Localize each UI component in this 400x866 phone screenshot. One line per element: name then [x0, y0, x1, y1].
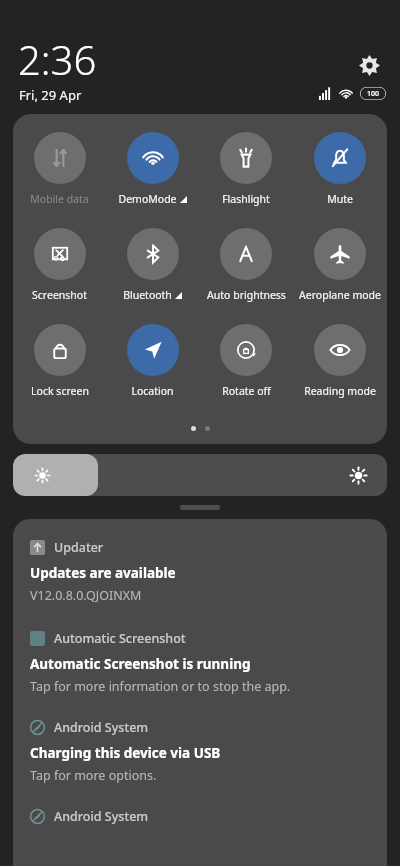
button[interactable]: Automatic Screenshot — [13, 630, 387, 695]
staticText: Updates are available — [30, 564, 176, 582]
staticText: Mute — [327, 192, 353, 206]
staticText: Fri, 29 Apr — [19, 86, 82, 104]
button[interactable]: Mobile data — [13, 132, 106, 206]
button[interactable]: Lock screen — [13, 324, 106, 398]
staticText: Tap for more options. — [30, 767, 157, 784]
staticText: Aeroplane mode — [299, 288, 381, 302]
staticText: Bluetooth — [123, 288, 172, 302]
button[interactable]: Brightness — [13, 454, 387, 496]
button[interactable]: Android System — [13, 719, 387, 784]
button[interactable]: Mute — [293, 132, 387, 206]
staticText: Auto brightness — [207, 288, 286, 302]
staticText: Rotate off — [222, 384, 271, 398]
button[interactable]: Settings — [352, 48, 386, 82]
staticText: Updater — [54, 539, 104, 556]
staticText: Android System — [54, 719, 149, 736]
staticText: Screenshot — [32, 288, 87, 302]
staticText: Tap for more information or to stop the … — [30, 678, 291, 695]
staticText: Android System — [54, 808, 149, 825]
staticText: Automatic Screenshot is running — [30, 655, 251, 673]
button[interactable]: Updater — [13, 539, 387, 604]
button[interactable]: Flashlight — [199, 132, 293, 206]
button[interactable]: Rotate off — [199, 324, 293, 398]
staticText: Lock screen — [31, 384, 89, 398]
button[interactable]: Bluetooth — [106, 228, 199, 302]
button[interactable]: Android System — [13, 808, 387, 825]
staticText: Reading mode — [304, 384, 376, 398]
staticText: V12.0.8.0.QJOINXM — [30, 587, 142, 604]
staticText: 2:36 — [18, 32, 97, 86]
staticText: Mobile data — [30, 192, 89, 206]
button[interactable]: DemoMode — [106, 132, 199, 206]
staticText: Location — [131, 384, 174, 398]
staticText: 100 — [367, 89, 380, 99]
button[interactable]: Auto brightness — [199, 228, 293, 302]
button[interactable]: Reading mode — [293, 324, 387, 398]
button[interactable]: Aeroplane mode — [293, 228, 387, 302]
staticText: Automatic Screenshot — [54, 630, 186, 647]
button[interactable]: Screenshot — [13, 228, 106, 302]
button[interactable]: Location — [106, 324, 199, 398]
staticText: Flashlight — [222, 192, 270, 206]
staticText: DemoMode — [118, 192, 177, 206]
staticText: Charging this device via USB — [30, 744, 221, 762]
